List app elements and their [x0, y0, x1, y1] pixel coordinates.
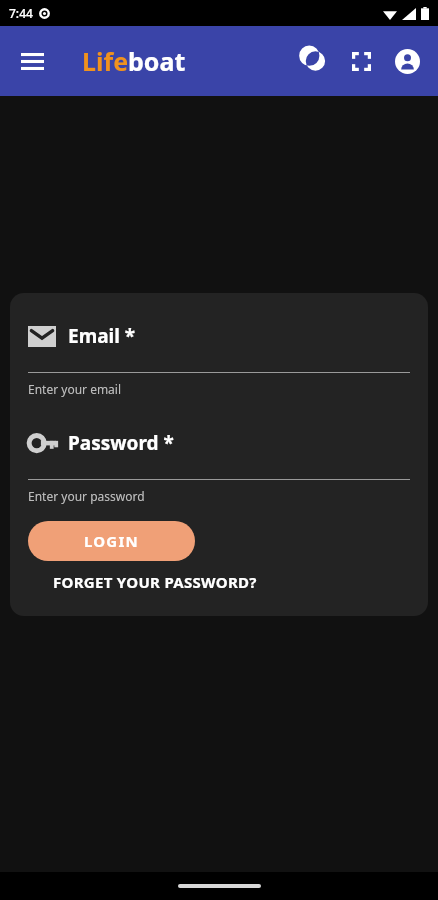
staticText: LOGIN [84, 531, 139, 551]
staticText: Email * [68, 323, 136, 349]
button[interactable]: Menu [10, 39, 54, 83]
button[interactable]: FORGET YOUR PASSWORD? [53, 570, 257, 594]
staticText: 7:44 [9, 5, 33, 21]
staticText: Enter your password [28, 488, 145, 504]
staticText: Enter your email [28, 381, 122, 397]
staticText: Password * [68, 430, 174, 456]
button[interactable]: Fullscreen [338, 38, 384, 84]
button[interactable]: Account [384, 38, 430, 84]
button[interactable]: LOGIN [28, 521, 195, 561]
button[interactable]: Dark mode [292, 38, 338, 84]
staticText: FORGET YOUR PASSWORD? [53, 572, 257, 592]
staticText: Lifeboat [82, 44, 186, 78]
